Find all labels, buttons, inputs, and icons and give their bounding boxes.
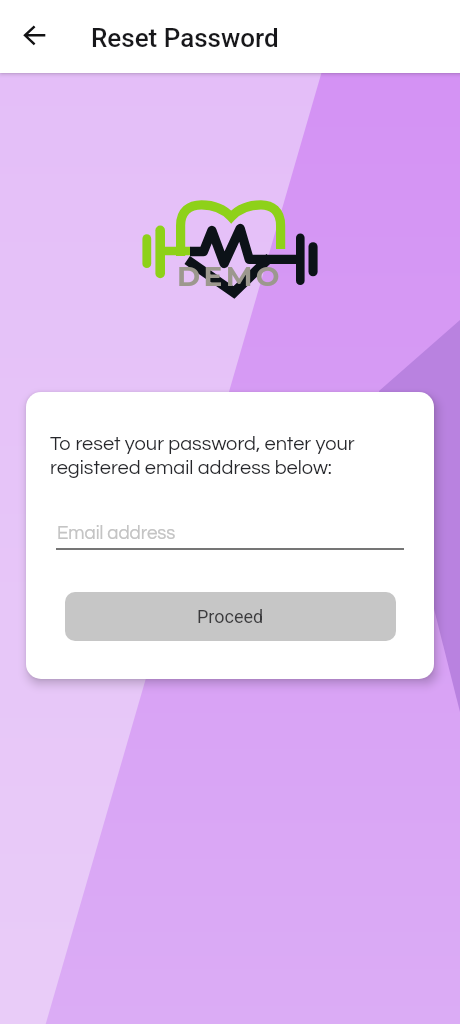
button[interactable]: Back (11, 11, 59, 59)
staticText: Email address (57, 524, 176, 543)
staticText: Proceed (197, 606, 264, 627)
staticText: To reset your password, enter your regis… (50, 434, 355, 478)
staticText: DEMO (177, 259, 283, 293)
button[interactable]: Proceed (65, 592, 396, 641)
staticText: Reset Password (91, 23, 279, 53)
